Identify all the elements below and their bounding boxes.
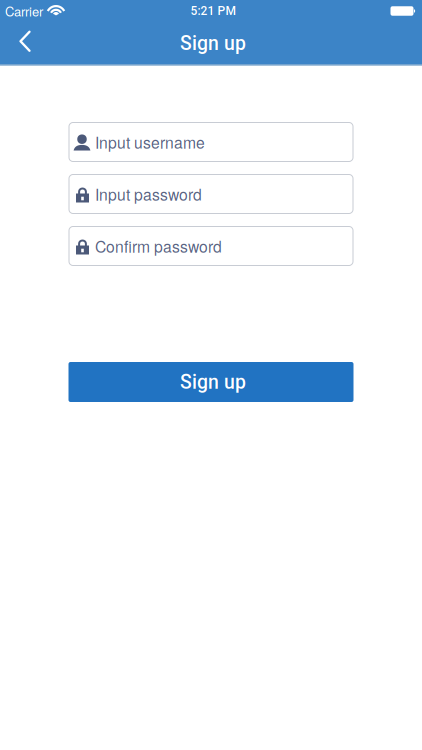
staticText: Sign up: [180, 371, 246, 393]
staticText: Carrier: [5, 2, 43, 20]
staticText: Input password: [95, 183, 202, 205]
button[interactable]: Input username: [68, 122, 353, 162]
button[interactable]: Sign up: [68, 362, 353, 402]
button[interactable]: Back: [0, 22, 42, 64]
staticText: 5:21 PM: [190, 4, 235, 18]
staticText: Confirm password: [95, 235, 222, 257]
button[interactable]: Confirm password: [68, 226, 353, 266]
staticText: Input username: [95, 131, 205, 153]
staticText: Sign up: [180, 32, 246, 55]
button[interactable]: Input password: [68, 174, 353, 214]
